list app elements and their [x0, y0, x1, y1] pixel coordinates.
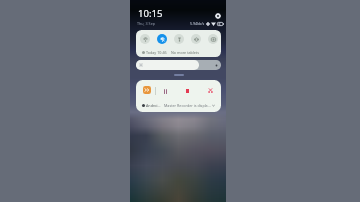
button[interactable]: Vibrate [191, 34, 201, 44]
button[interactable]: Brightness [136, 60, 221, 70]
button[interactable]: Cast [208, 34, 218, 44]
staticText: Thu, 3 Sep [137, 21, 155, 26]
staticText: Today 10:46 [146, 50, 167, 55]
staticText: 5.94kb/s [190, 21, 205, 26]
button[interactable]: Internet [140, 34, 150, 44]
button[interactable]: Pause [160, 86, 170, 96]
staticText: No more tablets [171, 50, 199, 55]
button[interactable]: Wi-Fi [157, 34, 167, 44]
staticText: Androi... [146, 103, 161, 108]
staticText: Master Recorder is displa... [164, 103, 211, 108]
button[interactable]: Pause [136, 80, 221, 112]
button[interactable]: Flashlight [174, 34, 184, 44]
button[interactable]: Cut [205, 85, 215, 95]
button[interactable]: Stop [182, 86, 192, 96]
button[interactable]: Settings [215, 13, 221, 19]
staticText: 10:15 [138, 7, 163, 20]
